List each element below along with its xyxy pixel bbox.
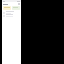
button[interactable] [13,7,19,9]
button[interactable] [2,14,21,17]
button[interactable] [2,2,21,6]
button[interactable] [4,7,10,9]
button[interactable] [2,11,21,14]
